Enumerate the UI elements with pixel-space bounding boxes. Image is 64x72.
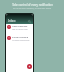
staticText: New message — [12, 25, 28, 28]
staticText: Parcel shipped — [12, 36, 29, 39]
button[interactable]: Search — [28, 20, 31, 23]
button[interactable]: Compose new message — [27, 64, 32, 69]
staticText: on all of your devices, in one tidy plac… — [13, 7, 51, 10]
staticText: Tap to reply now — [12, 28, 28, 31]
staticText: Take control of every notification — [12, 3, 53, 7]
button[interactable]: Parcel shipped — [6, 36, 33, 43]
staticText: Inbox — [8, 19, 16, 23]
staticText: Arriving tomorrow — [12, 39, 30, 42]
button[interactable]: New message — [6, 25, 33, 32]
